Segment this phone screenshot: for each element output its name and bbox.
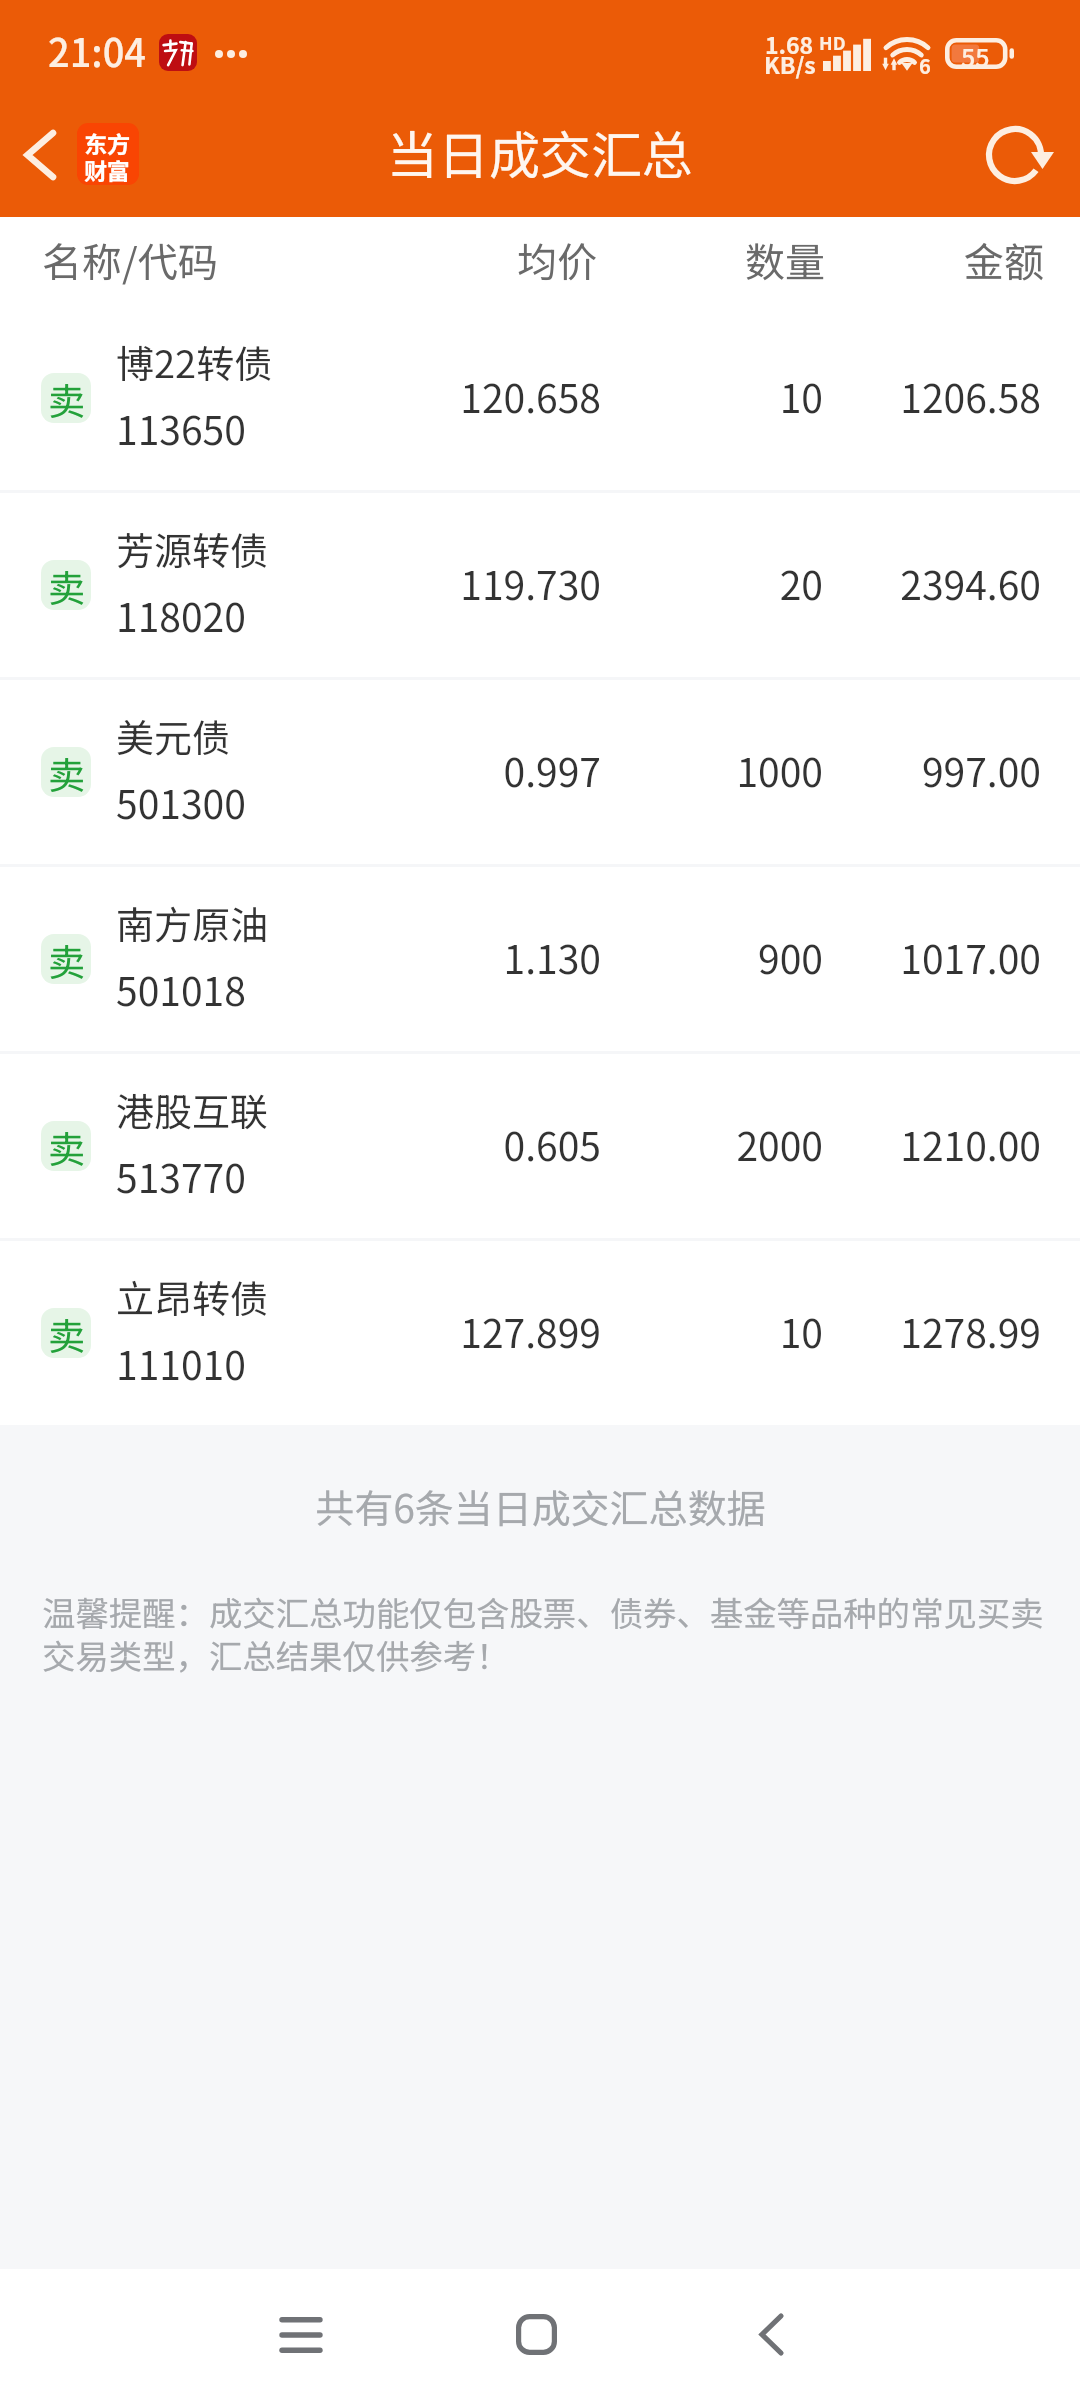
button[interactable]: Recent apps xyxy=(240,2269,361,2400)
staticText: 20 xyxy=(0,555,823,611)
button[interactable]: 卖 xyxy=(0,306,1080,490)
staticText: 113650 xyxy=(116,400,246,456)
staticText: 1210.00 xyxy=(0,1116,1041,1172)
staticText: 金额 xyxy=(0,231,1044,289)
button[interactable]: 卖 xyxy=(0,680,1080,864)
staticText: 港股互联 xyxy=(116,1082,269,1137)
staticText: 1.68 xyxy=(765,27,814,60)
staticText: 120.658 xyxy=(0,368,601,424)
staticText: 博22转债 xyxy=(116,334,273,389)
staticText: HD xyxy=(819,29,846,55)
staticText: 1278.99 xyxy=(0,1303,1041,1359)
button[interactable]: 卖 xyxy=(0,493,1080,677)
staticText: 名称/代码 xyxy=(42,231,218,289)
staticText: 卖 xyxy=(48,1121,85,1170)
button[interactable]: Back xyxy=(0,100,80,217)
staticText: 东方 xyxy=(84,126,130,159)
staticText: 1.130 xyxy=(0,929,601,985)
staticText: 21:04 xyxy=(48,23,146,78)
button[interactable]: Back xyxy=(711,2269,832,2400)
button[interactable]: Home xyxy=(476,2269,597,2400)
staticText: 南方原油 xyxy=(116,895,269,950)
staticText: 501018 xyxy=(116,961,246,1017)
staticText: 1000 xyxy=(0,742,823,798)
staticText: 513770 xyxy=(116,1148,246,1204)
staticText: KB/s xyxy=(764,47,816,80)
staticText: 501300 xyxy=(116,774,246,830)
staticText: 2000 xyxy=(0,1116,823,1172)
staticText: 卖 xyxy=(48,1308,85,1357)
staticText: 卖 xyxy=(48,373,85,422)
button[interactable]: East Money xyxy=(77,123,139,185)
staticText: 卖 xyxy=(48,747,85,796)
staticText: 财富 xyxy=(84,153,130,185)
staticText: 美元债 xyxy=(116,708,231,763)
staticText: 共有6条当日成交汇总数据 xyxy=(315,1478,766,1534)
staticText: 芳源转债 xyxy=(116,521,269,576)
staticText: 900 xyxy=(0,929,823,985)
staticText: 0.605 xyxy=(0,1116,601,1172)
staticText: 1017.00 xyxy=(0,929,1041,985)
staticText: 111010 xyxy=(116,1335,246,1391)
staticText: 卖 xyxy=(48,934,85,983)
staticText: 立昂转债 xyxy=(116,1269,269,1324)
staticText: 118020 xyxy=(116,587,246,643)
staticText: 55 xyxy=(961,38,990,69)
staticText: 10 xyxy=(0,368,823,424)
staticText: 数量 xyxy=(0,231,825,289)
staticText: 当日成交汇总 xyxy=(387,115,694,189)
staticText: 均价 xyxy=(0,231,597,289)
button[interactable]: 卖 xyxy=(0,867,1080,1051)
button[interactable]: 卖 xyxy=(0,1241,1080,1425)
staticText: 卖 xyxy=(48,560,85,609)
staticText: 1206.58 xyxy=(0,368,1041,424)
staticText: 0.997 xyxy=(0,742,601,798)
staticText: 127.899 xyxy=(0,1303,601,1359)
staticText: 6 xyxy=(919,51,931,80)
button[interactable]: Refresh xyxy=(962,100,1080,217)
staticText: 119.730 xyxy=(0,555,601,611)
staticText: 10 xyxy=(0,1303,823,1359)
staticText: 997.00 xyxy=(0,742,1041,798)
button[interactable]: 卖 xyxy=(0,1054,1080,1238)
staticText: 温馨提醒：成交汇总功能仅包含股票、债券、基金等品种的常见买卖交易类型，汇总结果仅… xyxy=(42,1587,1050,1678)
staticText: 2394.60 xyxy=(0,555,1041,611)
